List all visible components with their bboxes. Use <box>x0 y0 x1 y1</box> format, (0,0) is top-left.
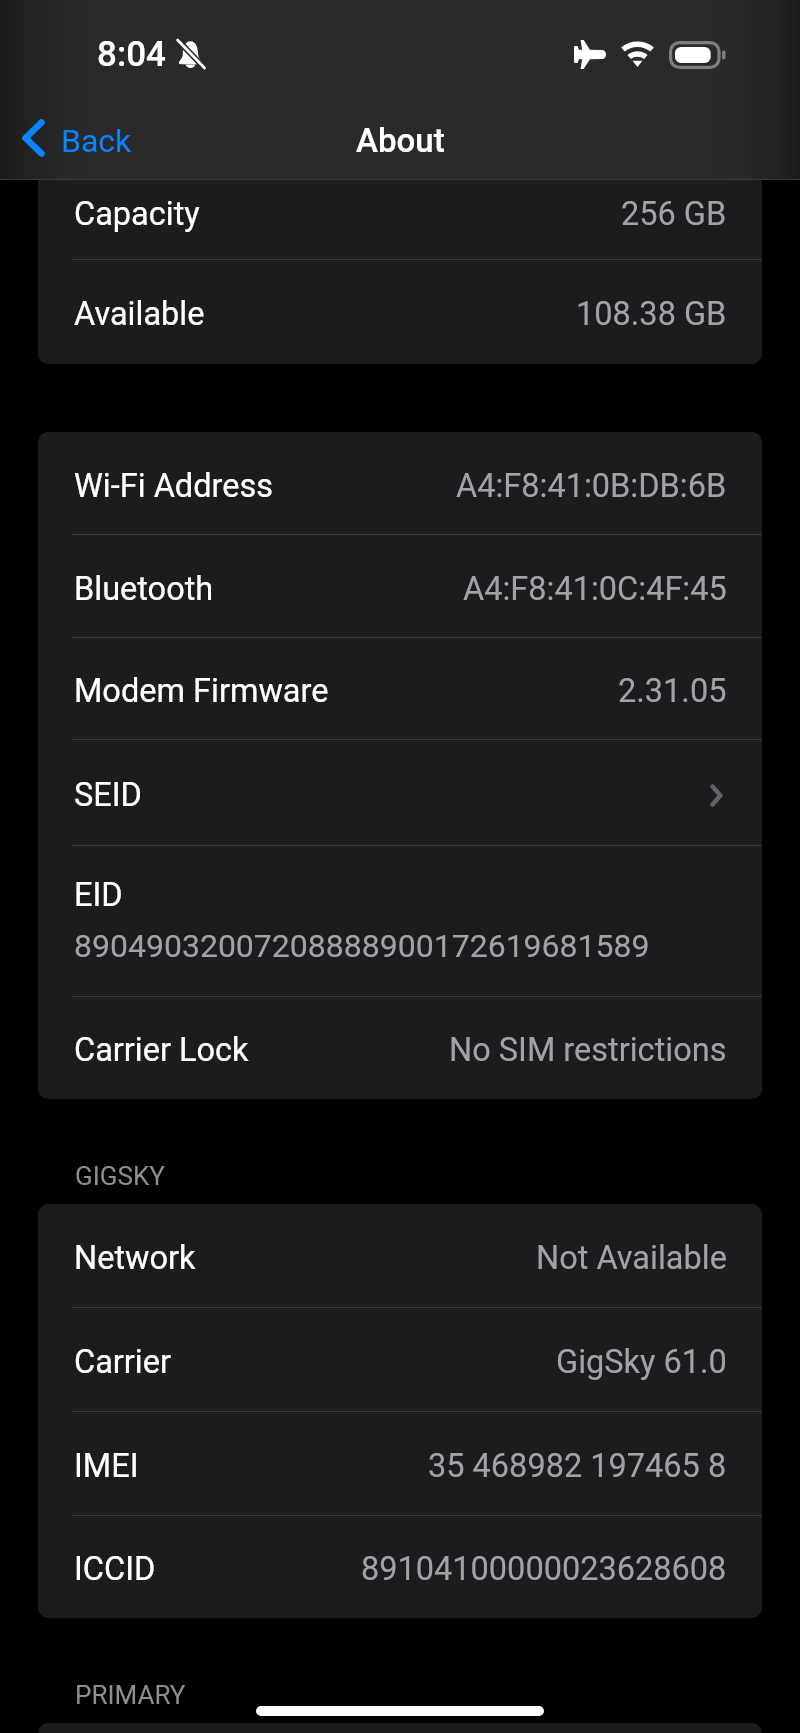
button[interactable]: Carrier Lock <box>38 997 762 1099</box>
button[interactable]: Network <box>38 1204 762 1308</box>
staticText: Carrier <box>74 1343 172 1381</box>
staticText: ICCID <box>74 1550 156 1588</box>
staticText: GigSky 61.0 <box>556 1343 727 1381</box>
staticText: 2.31.05 <box>618 672 727 710</box>
staticText: PRIMARY <box>75 1680 186 1710</box>
button[interactable]: Capacity <box>38 180 762 260</box>
staticText: 108.38 GB <box>576 295 727 333</box>
button[interactable]: ICCID <box>38 1516 762 1618</box>
button[interactable]: EID <box>38 846 762 997</box>
button[interactable]: Bluetooth <box>38 535 762 638</box>
staticText: GIGSKY <box>75 1161 165 1191</box>
staticText: Back <box>61 122 132 160</box>
staticText: 89104100000023628608 <box>361 1550 727 1588</box>
staticText: IMEI <box>74 1447 139 1485</box>
button[interactable]: SEID <box>38 740 762 846</box>
staticText: A4:F8:41:0C:4F:45 <box>463 570 727 608</box>
staticText: About <box>356 121 445 160</box>
staticText: Wi-Fi Address <box>74 467 273 505</box>
staticText: 89049032007208888900172619681589 <box>74 927 650 965</box>
staticText: Carrier Lock <box>74 1031 249 1069</box>
staticText: Capacity <box>74 195 200 233</box>
other: Open SEID details <box>710 784 723 807</box>
staticText: 8:04 <box>97 34 166 75</box>
staticText: Bluetooth <box>74 570 214 608</box>
staticText: A4:F8:41:0B:DB:6B <box>456 467 727 505</box>
staticText: EID <box>74 876 123 914</box>
button[interactable]: Carrier <box>38 1308 762 1412</box>
button[interactable]: IMEI <box>38 1412 762 1516</box>
staticText: 35 468982 197465 8 <box>428 1447 727 1485</box>
staticText: SEID <box>74 776 142 814</box>
staticText: Available <box>74 295 205 333</box>
button[interactable]: Available <box>38 260 762 364</box>
staticText: No SIM restrictions <box>449 1031 727 1069</box>
staticText: Not Available <box>536 1239 727 1277</box>
staticText: Network <box>74 1239 196 1277</box>
button[interactable]: Modem Firmware <box>38 638 762 740</box>
staticText: Modem Firmware <box>74 672 329 710</box>
staticText: 256 GB <box>621 195 727 233</box>
button[interactable]: Wi-Fi Address <box>38 432 762 535</box>
button[interactable]: Back <box>0 114 148 168</box>
